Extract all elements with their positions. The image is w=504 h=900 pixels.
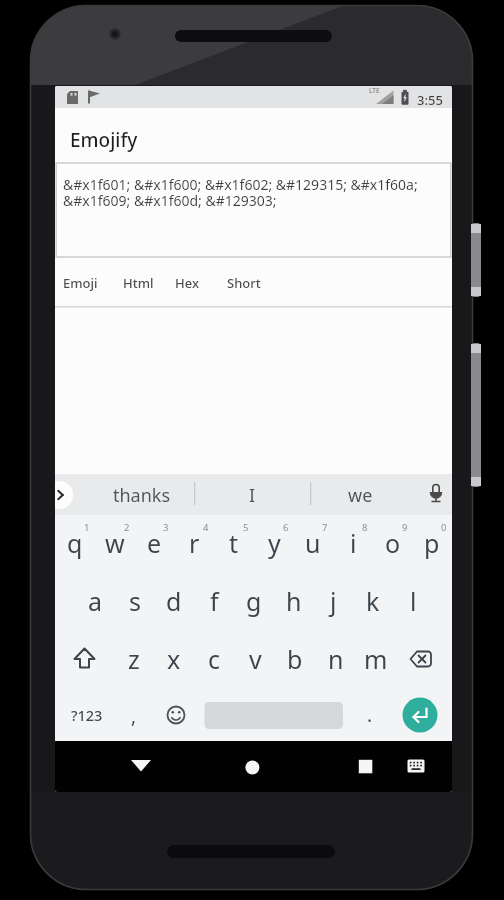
- staticText: 3: [163, 521, 169, 534]
- button[interactable]: [55, 481, 83, 509]
- button[interactable]: [95, 476, 191, 514]
- staticText: w: [105, 526, 125, 560]
- staticText: 6: [283, 521, 289, 534]
- staticText: a: [88, 584, 103, 618]
- button[interactable]: [57, 266, 109, 294]
- button[interactable]: [421, 478, 451, 512]
- staticText: d: [166, 584, 182, 618]
- staticText: m: [364, 642, 388, 676]
- staticText: n: [328, 642, 344, 676]
- staticText: i: [350, 526, 357, 560]
- staticText: 7: [322, 521, 328, 534]
- staticText: 5: [243, 521, 249, 534]
- button[interactable]: [56, 163, 451, 257]
- staticText: j: [330, 584, 337, 618]
- button[interactable]: [345, 747, 385, 787]
- button[interactable]: [401, 639, 441, 679]
- staticText: Emojify: [70, 127, 138, 153]
- staticText: 0: [441, 521, 447, 534]
- staticText: &#x1f601; &#x1f600; &#x1f602; &#129315; …: [63, 175, 418, 194]
- staticText: g: [246, 584, 262, 618]
- staticText: Emoji: [63, 274, 98, 292]
- staticText: u: [305, 526, 321, 560]
- staticText: Hex: [175, 274, 199, 292]
- button[interactable]: [402, 697, 438, 733]
- button[interactable]: [67, 695, 107, 735]
- button[interactable]: [313, 476, 413, 514]
- staticText: 4: [203, 521, 209, 534]
- staticText: 2: [124, 521, 130, 534]
- button[interactable]: [203, 476, 303, 514]
- staticText: 3:55: [417, 91, 443, 109]
- button[interactable]: [65, 639, 105, 679]
- staticText: t: [229, 526, 239, 560]
- staticText: &#x1f609; &#x1f60d; &#129303;: [63, 191, 277, 210]
- button[interactable]: [121, 747, 161, 787]
- staticText: thanks: [113, 483, 171, 508]
- staticText: k: [366, 584, 380, 618]
- button[interactable]: [399, 747, 435, 787]
- staticText: ?123: [71, 705, 103, 725]
- staticText: q: [67, 526, 83, 560]
- staticText: y: [268, 526, 281, 560]
- button[interactable]: [221, 266, 269, 294]
- staticText: c: [208, 642, 221, 676]
- staticText: I: [249, 483, 256, 508]
- staticText: b: [287, 642, 303, 676]
- staticText: we: [348, 483, 373, 508]
- staticText: r: [189, 526, 200, 560]
- staticText: o: [385, 526, 401, 560]
- staticText: h: [286, 584, 302, 618]
- staticText: 1: [84, 521, 90, 534]
- staticText: ,: [131, 703, 137, 729]
- button[interactable]: [156, 695, 196, 735]
- staticText: .: [367, 702, 373, 728]
- staticText: 9: [402, 521, 408, 534]
- button[interactable]: [232, 747, 272, 787]
- staticText: f: [210, 584, 219, 618]
- staticText: x: [167, 642, 181, 676]
- button[interactable]: [169, 266, 209, 294]
- staticText: Short: [227, 274, 261, 292]
- staticText: v: [249, 642, 262, 676]
- staticText: Html: [123, 274, 154, 292]
- staticText: e: [147, 526, 162, 560]
- staticText: LTE: [369, 86, 380, 95]
- staticText: p: [424, 526, 440, 560]
- staticText: 8: [362, 521, 368, 534]
- staticText: s: [129, 584, 141, 618]
- staticText: l: [410, 584, 417, 618]
- button[interactable]: [117, 266, 161, 294]
- staticText: z: [128, 642, 140, 676]
